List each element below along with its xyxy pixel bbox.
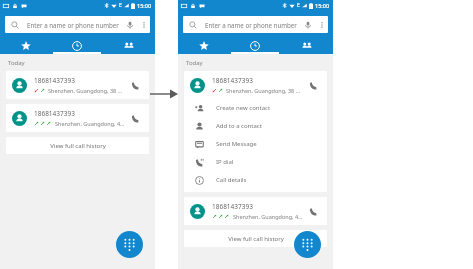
button[interactable]: Add to a contact	[184, 117, 327, 135]
button[interactable]: Call	[305, 203, 321, 219]
staticText: 18681437393	[212, 202, 253, 211]
staticText: Enter a name or phone number	[27, 21, 123, 29]
button[interactable]: Dialpad	[116, 231, 143, 258]
button[interactable]: 18681437393	[6, 71, 149, 99]
staticText: Shenzhen, Guangdong, 42...	[233, 213, 305, 220]
button[interactable]: Recents	[51, 37, 103, 54]
staticText: Shenzhen, Guangdong, 38 mi...	[226, 87, 305, 94]
staticText: 15:00	[137, 2, 152, 9]
button[interactable]: Create new contact	[184, 99, 327, 117]
button[interactable]: IP dial	[184, 153, 327, 171]
staticText: E	[297, 2, 300, 9]
button[interactable]: Call	[127, 77, 143, 93]
staticText: Add to a contact	[216, 122, 262, 130]
staticText: View full call history	[228, 235, 284, 243]
button[interactable]: Favorites	[0, 37, 51, 54]
button[interactable]: More options	[315, 18, 328, 31]
staticText: 18681437393	[34, 76, 75, 85]
staticText: IP dial	[216, 158, 234, 166]
button[interactable]: View full call history	[6, 137, 149, 154]
staticText: Shenzhen, Guangdong, 42...	[55, 120, 127, 127]
button[interactable]: 18681437393	[6, 104, 149, 132]
button[interactable]: Send Message	[184, 135, 327, 153]
button[interactable]: 18681437393	[184, 197, 327, 225]
staticText: 18681437393	[212, 76, 253, 85]
button[interactable]: Voice search	[123, 18, 137, 32]
button[interactable]: Call	[127, 110, 143, 126]
button[interactable]: Call	[305, 77, 321, 93]
staticText: 15:00	[315, 2, 330, 9]
button[interactable]: Voice search	[301, 18, 315, 32]
staticText: Shenzhen, Guangdong, 38 mi...	[48, 87, 127, 94]
staticText: View full call history	[50, 142, 106, 150]
button[interactable]: View full call history	[184, 230, 327, 247]
button[interactable]: Contacts	[103, 37, 155, 54]
staticText: 18681437393	[34, 109, 75, 118]
button[interactable]: Dialpad	[294, 231, 321, 258]
staticText: Today	[8, 59, 25, 67]
button[interactable]: Call details	[184, 171, 327, 189]
staticText: Today	[186, 59, 203, 67]
button[interactable]: Contacts	[281, 37, 333, 54]
button[interactable]: More options	[137, 18, 150, 31]
button[interactable]: Favorites	[178, 37, 229, 54]
staticText: Create new contact	[216, 104, 271, 112]
staticText: Send Message	[216, 140, 257, 148]
button[interactable]: Enter a name or phone number	[183, 16, 328, 33]
staticText: Call details	[216, 176, 247, 184]
button[interactable]: 18681437393	[184, 71, 327, 99]
button[interactable]: Enter a name or phone number	[5, 16, 150, 33]
staticText: E	[119, 2, 122, 9]
button[interactable]: Recents	[229, 37, 281, 54]
staticText: Enter a name or phone number	[205, 21, 301, 29]
